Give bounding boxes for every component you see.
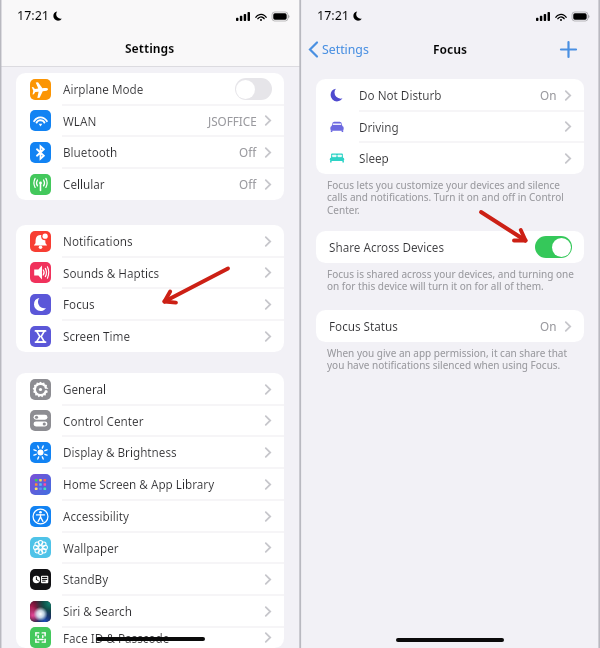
staticText: Share Across Devices: [329, 239, 535, 255]
button[interactable]: Accessibility: [16, 500, 284, 532]
button[interactable]: Bluetooth: [16, 136, 284, 168]
staticText: 17:21: [317, 7, 350, 24]
staticText: Home Screen & App Library: [63, 476, 263, 492]
staticText: Settings: [125, 40, 175, 56]
staticText: Face ID & Passcode: [63, 630, 263, 646]
button[interactable]: Turn off: [535, 236, 572, 258]
staticText: On: [540, 87, 557, 103]
button[interactable]: Settings: [308, 41, 369, 58]
button[interactable]: Add Focus: [557, 38, 579, 60]
button[interactable]: Wallpaper: [16, 532, 284, 563]
staticText: Control Center: [63, 413, 263, 429]
staticText: 17:21: [17, 7, 50, 24]
button[interactable]: Home Screen & App Library: [16, 468, 284, 500]
button[interactable]: Control Center: [16, 405, 284, 436]
button[interactable]: Airplane Mode: [16, 73, 284, 105]
staticText: Focus: [433, 41, 468, 57]
staticText: Screen Time: [63, 328, 263, 344]
button[interactable]: Focus: [16, 288, 284, 320]
staticText: StandBy: [63, 571, 263, 587]
staticText: Do Not Disturb: [359, 87, 540, 103]
staticText: Focus Status: [329, 318, 540, 334]
staticText: Focus is shared across your devices, and…: [327, 267, 577, 293]
staticText: Notifications: [63, 233, 263, 249]
staticText: Wallpaper: [63, 540, 263, 556]
staticText: Off: [239, 144, 257, 160]
staticText: Driving: [359, 119, 563, 135]
staticText: Off: [239, 176, 257, 192]
staticText: Siri & Search: [63, 603, 263, 619]
staticText: Bluetooth: [63, 144, 239, 160]
button[interactable]: Display & Brightness: [16, 436, 284, 468]
button[interactable]: Turn on: [235, 78, 272, 100]
button[interactable]: Screen Time: [16, 320, 284, 352]
staticText: JSOFFICE: [208, 113, 257, 129]
button[interactable]: General: [16, 373, 284, 405]
staticText: Sleep: [359, 150, 563, 166]
button[interactable]: Do Not Disturb: [316, 79, 584, 111]
staticText: Focus lets you customize your devices an…: [327, 178, 577, 217]
button[interactable]: WLAN: [16, 105, 284, 136]
button[interactable]: Sounds & Haptics: [16, 257, 284, 288]
staticText: When you give an app permission, it can …: [327, 346, 577, 372]
staticText: Sounds & Haptics: [63, 265, 263, 281]
button[interactable]: Face ID & Passcode: [16, 627, 284, 648]
button[interactable]: Driving: [316, 111, 584, 142]
staticText: Airplane Mode: [63, 81, 235, 97]
staticText: Display & Brightness: [63, 444, 263, 460]
staticText: Settings: [322, 41, 369, 58]
button[interactable]: Cellular: [16, 168, 284, 200]
staticText: General: [63, 381, 263, 397]
button[interactable]: Sleep: [316, 142, 584, 174]
staticText: Accessibility: [63, 508, 263, 524]
button[interactable]: Focus Status: [316, 310, 584, 342]
button[interactable]: StandBy: [16, 563, 284, 595]
button[interactable]: Share Across Devices: [316, 231, 584, 263]
staticText: On: [540, 318, 557, 334]
button[interactable]: Siri & Search: [16, 595, 284, 627]
staticText: WLAN: [63, 113, 208, 129]
button[interactable]: Notifications: [16, 225, 284, 257]
staticText: Focus: [63, 296, 263, 312]
staticText: Cellular: [63, 176, 239, 192]
